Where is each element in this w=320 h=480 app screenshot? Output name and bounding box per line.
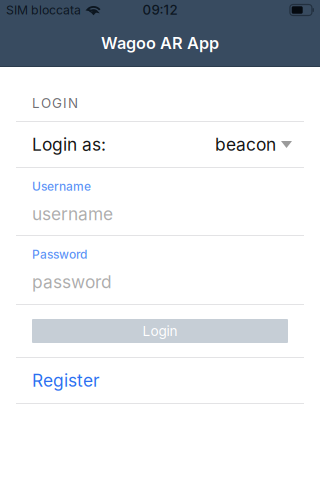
staticText: beacon [215,134,276,155]
staticText: 09:12 [142,2,177,18]
staticText: Password [32,247,87,261]
staticText: Login as: [32,134,106,155]
button[interactable]: Login [32,319,288,343]
staticText: password [32,271,112,292]
staticText: Username [32,179,91,193]
staticText: SIM bloccata [6,3,81,17]
staticText: Register [32,370,100,391]
staticText: username [32,203,113,224]
button[interactable]: Register [0,358,320,403]
staticText: L O G I N [32,95,78,111]
button[interactable]: Login as: [0,122,320,167]
staticText: Login [142,323,177,339]
staticText: Wagoo AR App [101,33,219,53]
